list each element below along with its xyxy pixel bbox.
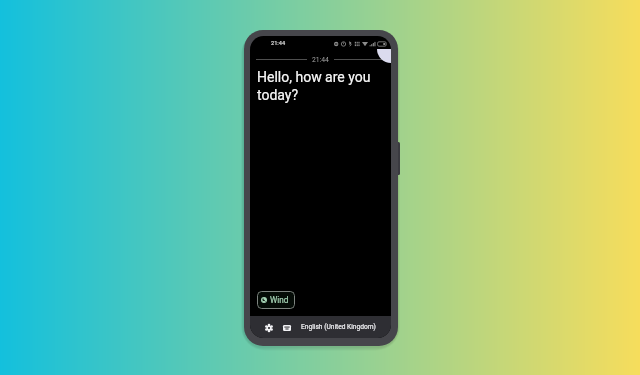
button[interactable]: Keyboard — [280, 321, 293, 334]
button[interactable]: Settings — [262, 321, 275, 334]
button[interactable]: Wind — [257, 291, 295, 309]
staticText: 21:44 — [312, 56, 329, 64]
button[interactable]: English (United Kingdom) — [301, 323, 376, 331]
staticText: Hello, how are you today? — [257, 69, 386, 104]
staticText: Wind — [270, 295, 289, 305]
staticText: 21:44 — [271, 40, 286, 47]
